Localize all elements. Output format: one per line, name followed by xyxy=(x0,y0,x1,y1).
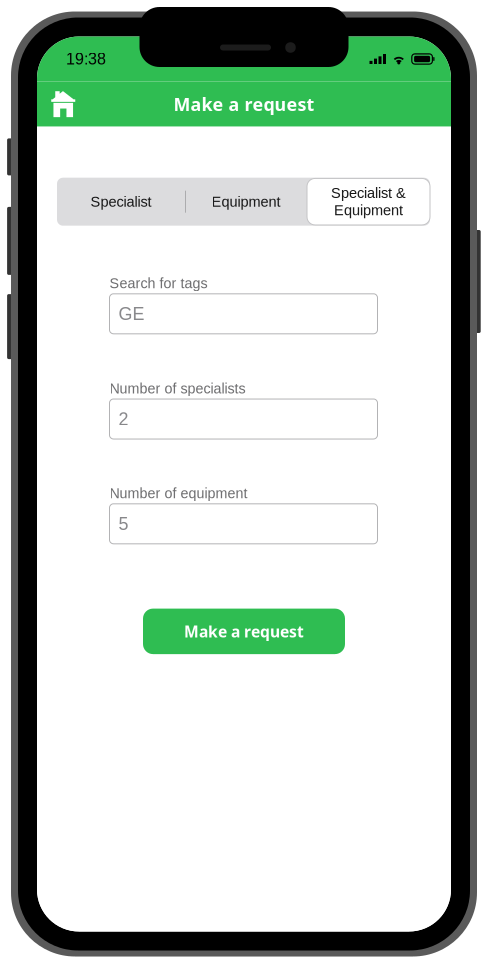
staticText: Number of equipment xyxy=(109,485,247,501)
staticText: Number of specialists xyxy=(109,380,245,396)
button[interactable]: Equipment xyxy=(185,178,307,226)
staticText: 19:38 xyxy=(66,50,106,68)
staticText: Specialist xyxy=(90,194,151,210)
staticText: Equipment xyxy=(334,202,403,218)
staticText: Equipment xyxy=(211,194,280,210)
button[interactable]: Specialist xyxy=(57,178,185,226)
staticText: 2 xyxy=(118,409,128,429)
staticText: GE xyxy=(118,304,144,324)
staticText: Specialist & xyxy=(331,185,406,201)
button[interactable]: Home xyxy=(37,81,89,127)
staticText: 5 xyxy=(118,514,128,534)
button[interactable]: Make a request xyxy=(143,609,345,654)
staticText: Make a request xyxy=(184,621,304,642)
button[interactable]: Specialist & xyxy=(307,178,430,225)
staticText: Make a request xyxy=(173,92,314,116)
staticText: Search for tags xyxy=(109,275,207,291)
